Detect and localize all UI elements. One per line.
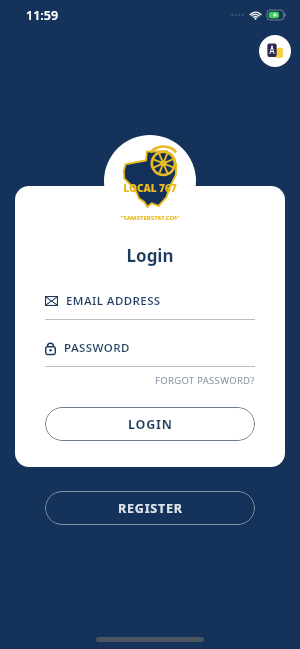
staticText: REGISTER [118,500,183,517]
button[interactable]: Account [259,35,291,67]
staticText: 11:59 [26,7,59,24]
staticText: TEAMSTERS767.COM [120,214,180,222]
button[interactable]: REGISTER [45,491,255,525]
button[interactable]: LOGIN [45,407,255,441]
staticText: LOGIN [128,416,173,433]
staticText: LOCAL 767 [123,181,177,195]
staticText: FORGOT PASSWORD? [155,374,255,387]
button[interactable]: FORGOT PASSWORD? [155,374,255,387]
staticText: PASSWORD [64,340,130,356]
button[interactable]: PASSWORD [45,340,255,367]
button[interactable]: EMAIL ADDRESS [45,293,255,320]
staticText: Login [15,244,285,267]
staticText: EMAIL ADDRESS [66,293,161,309]
